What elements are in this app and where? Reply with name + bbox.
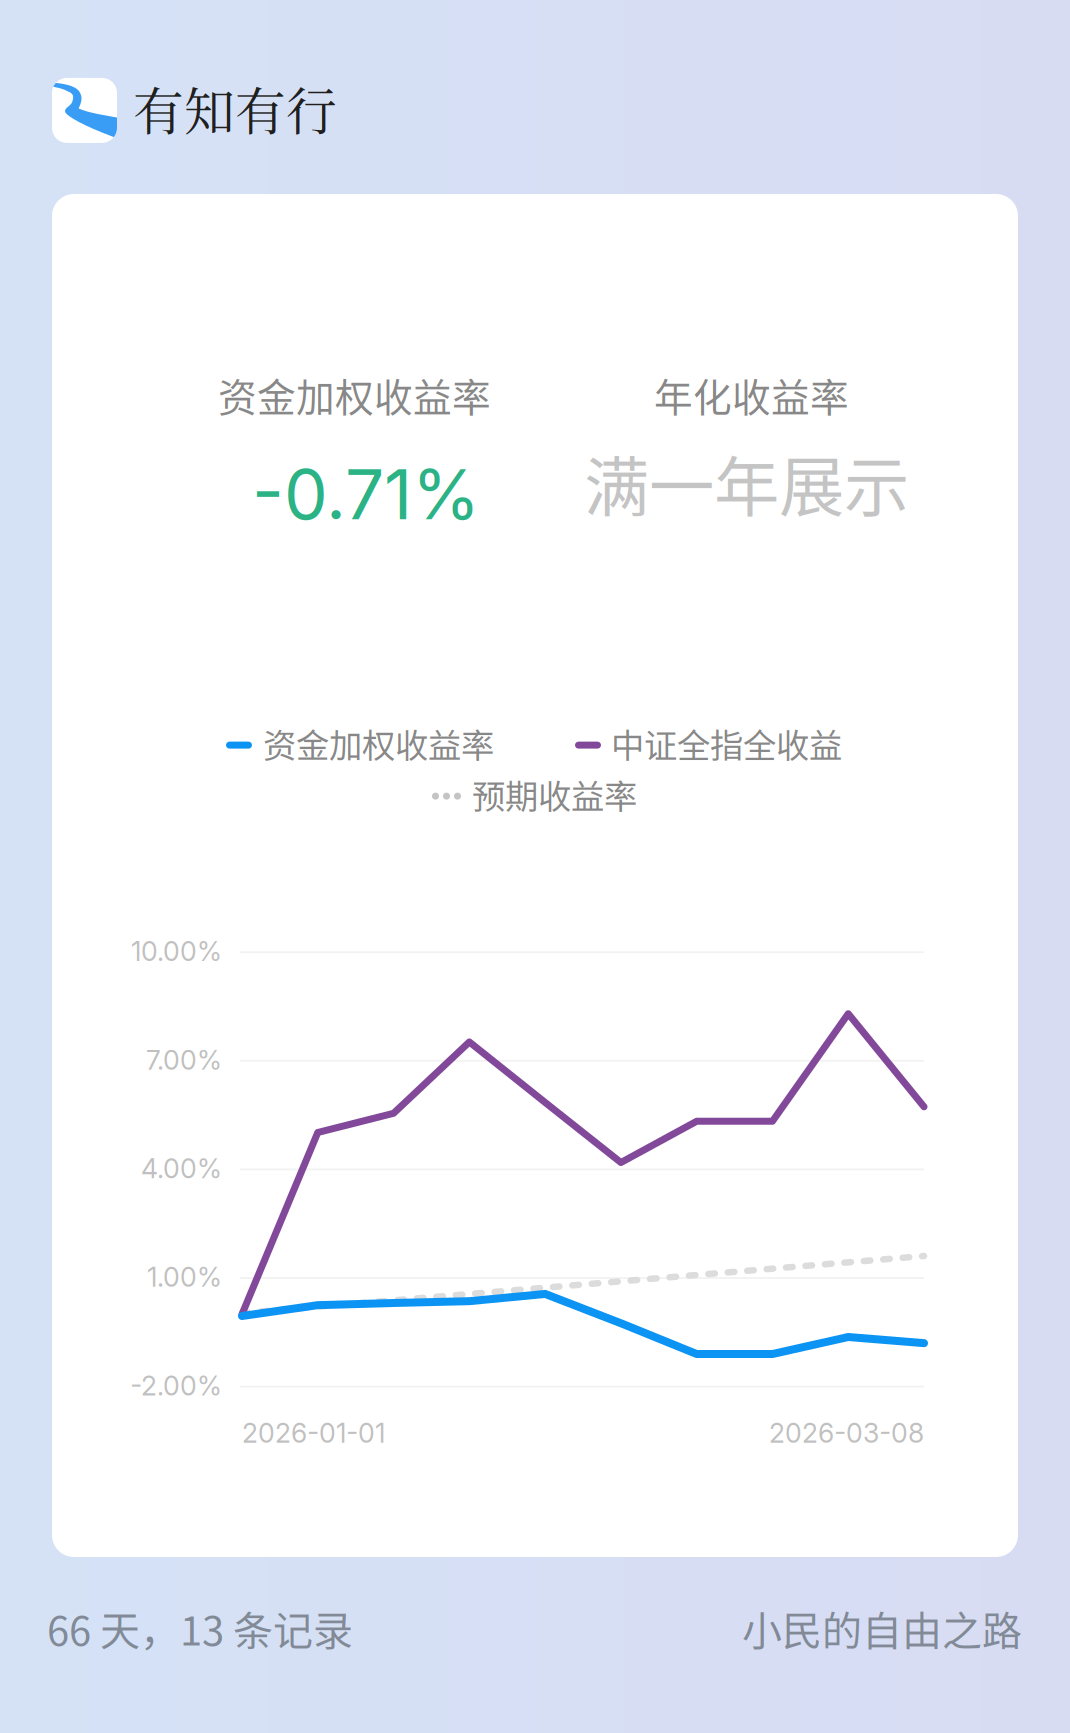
staticText: -2.00% [130, 1370, 222, 1402]
staticText: 4.00% [141, 1152, 222, 1185]
staticText: 中证全指全收益 [611, 719, 842, 767]
staticText: -0.71% [252, 452, 480, 536]
staticText: 预期收益率 [472, 770, 637, 818]
button[interactable]: 有知有行 [52, 74, 337, 147]
button[interactable]: 资金加权收益率 [226, 719, 494, 767]
staticText: 年化收益率 [654, 367, 849, 423]
staticText: 10.00% [131, 935, 222, 967]
staticText: 7.00% [146, 1044, 222, 1076]
staticText: 2026-03-08 [769, 1417, 924, 1449]
staticText: 资金加权收益率 [218, 367, 491, 423]
staticText: 满一年展示 [584, 435, 909, 530]
button[interactable]: 中证全指全收益 [575, 719, 842, 767]
staticText: 有知有行 [133, 72, 337, 145]
staticText: 小民的自由之路 [742, 1599, 1022, 1657]
staticText: 66 天，13 条记录 [47, 1599, 353, 1657]
button[interactable]: 预期收益率 [432, 770, 637, 818]
staticText: 1.00% [147, 1261, 222, 1293]
staticText: 资金加权收益率 [263, 719, 494, 767]
staticText: 2026-01-01 [242, 1417, 385, 1449]
